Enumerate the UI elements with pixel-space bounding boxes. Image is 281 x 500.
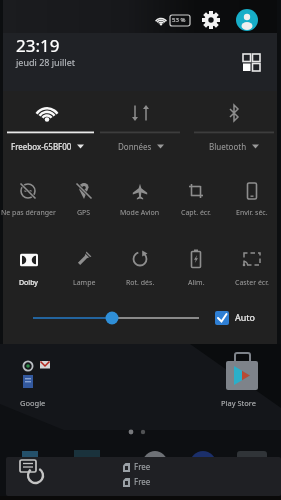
button[interactable] xyxy=(224,170,280,225)
staticText: Lampe xyxy=(73,278,96,288)
button[interactable] xyxy=(187,95,281,155)
staticText: Bluetooth xyxy=(209,141,247,152)
button[interactable] xyxy=(168,240,224,295)
staticText: Ne pas déranger xyxy=(1,208,56,218)
staticText: Caster écr. xyxy=(235,278,269,288)
staticText: Données xyxy=(118,141,152,152)
button[interactable] xyxy=(94,95,187,155)
button[interactable] xyxy=(112,240,168,295)
staticText: GPS xyxy=(77,208,91,218)
button[interactable] xyxy=(238,50,264,76)
button[interactable] xyxy=(56,170,112,225)
button[interactable] xyxy=(112,170,168,225)
staticText: Envir. séc. xyxy=(236,208,268,218)
staticText: Free xyxy=(134,476,151,487)
button[interactable] xyxy=(168,170,224,225)
button[interactable] xyxy=(30,305,210,331)
staticText: 53 % xyxy=(172,16,186,24)
button[interactable] xyxy=(0,240,56,295)
staticText: Alim. xyxy=(188,278,205,288)
button[interactable] xyxy=(0,95,94,155)
staticText: Rot. dés. xyxy=(126,278,155,288)
staticText: Play Store xyxy=(221,398,256,408)
button[interactable] xyxy=(236,9,259,32)
button[interactable] xyxy=(200,9,223,32)
button[interactable] xyxy=(210,306,262,330)
button[interactable] xyxy=(14,352,58,404)
button[interactable] xyxy=(224,240,280,295)
staticText: Freebox-65BF00 xyxy=(11,141,72,152)
button[interactable] xyxy=(14,458,52,494)
staticText: Free xyxy=(134,461,151,472)
button[interactable] xyxy=(222,348,266,404)
button[interactable] xyxy=(56,240,112,295)
staticText: Google xyxy=(20,398,46,408)
staticText: Capt. écr. xyxy=(181,208,211,218)
button[interactable] xyxy=(0,170,56,225)
staticText: Mode Avion xyxy=(120,208,160,218)
staticText: jeudi 28 juillet xyxy=(16,56,75,68)
staticText: 23:19 xyxy=(16,34,60,57)
staticText: Auto xyxy=(235,311,256,323)
staticText: Dolby xyxy=(19,278,38,288)
